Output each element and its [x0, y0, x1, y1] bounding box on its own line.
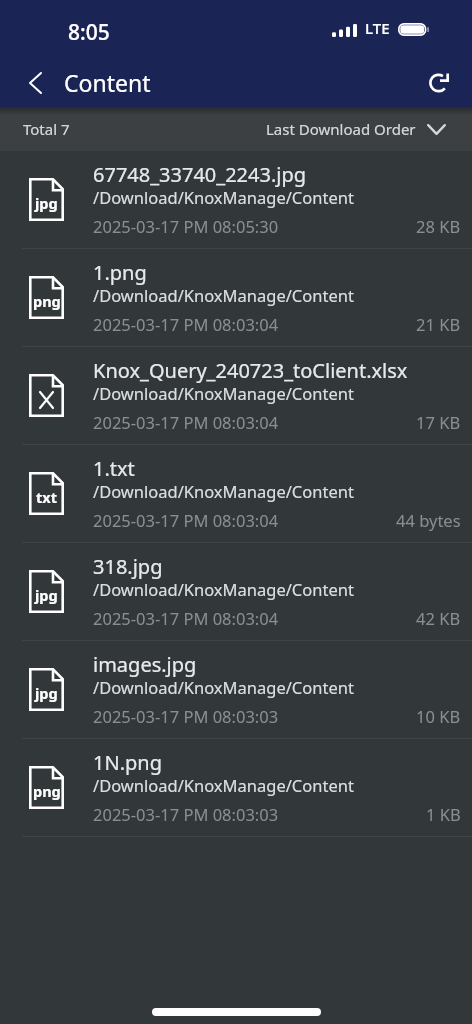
staticText: 1N.png	[93, 749, 162, 776]
staticText: 2025-03-17 PM 08:03:04	[93, 313, 279, 335]
staticText: txt	[36, 487, 57, 507]
staticText: /Download/KnoxManage/Content	[93, 774, 354, 796]
button[interactable]: jpg	[0, 641, 472, 738]
button[interactable]: png	[0, 249, 472, 346]
staticText: Total 7	[23, 119, 70, 139]
staticText: jpg	[35, 193, 58, 213]
staticText: png	[33, 781, 61, 801]
staticText: Content	[64, 67, 151, 98]
staticText: 10 KB	[416, 705, 461, 727]
staticText: /Download/KnoxManage/Content	[93, 676, 354, 698]
button[interactable]: txt	[0, 445, 472, 542]
staticText: 2025-03-17 PM 08:03:04	[93, 411, 279, 433]
staticText: 28 KB	[416, 215, 461, 237]
button[interactable]: jpg	[0, 543, 472, 640]
staticText: 17 KB	[416, 411, 461, 433]
staticText: 8:05	[68, 18, 110, 47]
staticText: /Download/KnoxManage/Content	[93, 186, 354, 208]
staticText: 44 bytes	[396, 509, 461, 531]
staticText: jpg	[35, 683, 58, 703]
button[interactable]: Last Download Order	[266, 119, 446, 139]
staticText: 21 KB	[416, 313, 461, 335]
staticText: Knox_Query_240723_toClient.xlsx	[93, 357, 408, 384]
button[interactable]: png	[0, 739, 472, 836]
staticText: jpg	[35, 585, 58, 605]
staticText: 1.png	[93, 259, 147, 286]
staticText: 1.txt	[93, 455, 135, 482]
staticText: /Download/KnoxManage/Content	[93, 382, 354, 404]
staticText: 318.jpg	[93, 553, 163, 580]
staticText: 2025-03-17 PM 08:05:30	[93, 215, 279, 237]
staticText: 2025-03-17 PM 08:03:04	[93, 607, 279, 629]
staticText: /Download/KnoxManage/Content	[93, 578, 354, 600]
staticText: images.jpg	[93, 651, 197, 678]
button[interactable]: jpg	[0, 151, 472, 248]
button[interactable]: Knox_Query_240723_toClient.xlsx	[0, 347, 472, 444]
staticText: png	[33, 291, 61, 311]
staticText: 67748_33740_2243.jpg	[93, 161, 307, 188]
button[interactable]: Back	[0, 58, 57, 107]
staticText: Last Download Order	[266, 119, 416, 139]
staticText: /Download/KnoxManage/Content	[93, 284, 354, 306]
button[interactable]: Refresh	[418, 61, 462, 105]
staticText: LTE	[365, 18, 390, 38]
staticText: /Download/KnoxManage/Content	[93, 480, 354, 502]
staticText: 1 KB	[426, 803, 461, 825]
staticText: 2025-03-17 PM 08:03:03	[93, 705, 279, 727]
staticText: 2025-03-17 PM 08:03:03	[93, 803, 279, 825]
staticText: 42 KB	[416, 607, 461, 629]
staticText: 2025-03-17 PM 08:03:04	[93, 509, 279, 531]
